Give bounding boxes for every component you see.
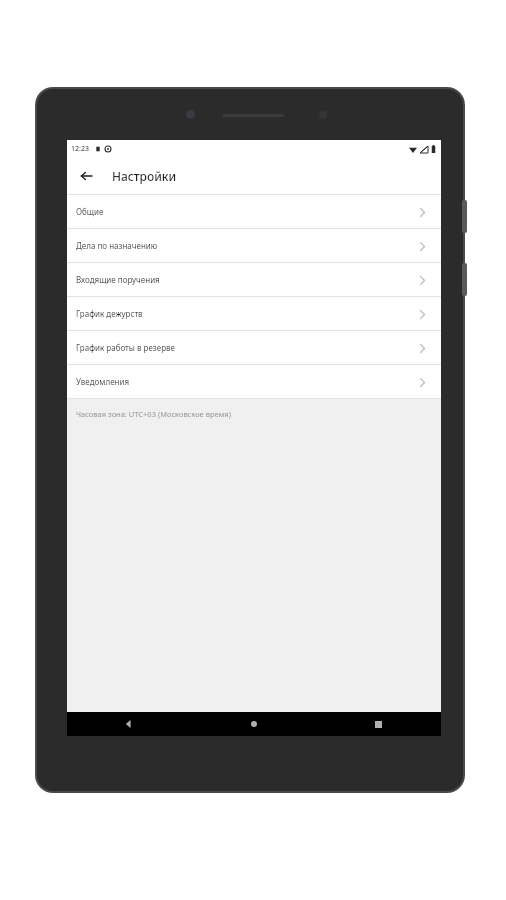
staticText: Входящие поручения: [76, 274, 417, 285]
button[interactable]: Назад: [67, 712, 191, 736]
staticText: График дежурств: [76, 308, 417, 319]
staticText: Уведомления: [76, 376, 417, 387]
button[interactable]: Общие: [67, 195, 441, 228]
staticText: 12:23: [71, 144, 89, 154]
staticText: Общие: [76, 206, 417, 217]
button[interactable]: График работы в резерве: [67, 331, 441, 364]
button[interactable]: Уведомления: [67, 365, 441, 398]
button[interactable]: Назад: [75, 165, 97, 187]
staticText: График работы в резерве: [76, 342, 417, 353]
button[interactable]: График дежурств: [67, 297, 441, 330]
button[interactable]: Недавние приложения: [316, 712, 441, 736]
staticText: Настройки: [112, 168, 177, 184]
button[interactable]: Дела по назначению: [67, 229, 441, 262]
button[interactable]: Главный экран: [191, 712, 316, 736]
button[interactable]: Входящие поручения: [67, 263, 441, 296]
staticText: Дела по назначению: [76, 240, 417, 251]
staticText: Часовая зона: UTC+03 (Московское время): [76, 409, 231, 419]
